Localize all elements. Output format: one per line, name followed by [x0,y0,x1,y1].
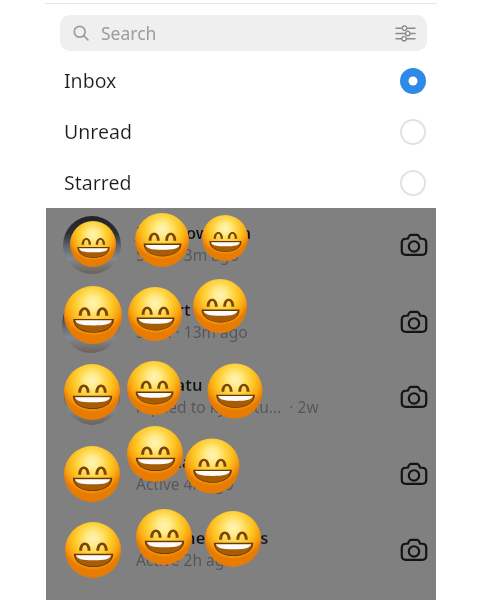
staticText: replied to kybnatu... · 2w [136,396,319,417]
button[interactable]: Robert [46,284,436,360]
button[interactable]: Camera [401,386,427,408]
staticText: Search [101,21,157,45]
button[interactable]: Amelia [46,436,436,512]
button[interactable]: Search [60,15,427,51]
staticText: Robert [136,298,191,320]
button[interactable]: Camera [401,311,427,333]
staticText: Seen · 3m ago [136,244,239,265]
button[interactable]: Camera [401,463,427,485]
staticText: Inbox [64,67,117,94]
staticText: Amelia [136,450,192,472]
staticText: Active 4h ago [136,473,234,494]
staticText: Active 2h ago [136,549,234,570]
staticText: Seen · 13m ago [136,321,248,342]
button[interactable]: Starred [0,157,480,208]
button[interactable]: Camera [401,234,427,256]
staticText: kybnatu [136,373,203,395]
button[interactable]: kybnatu [46,359,436,435]
button[interactable]: Inbox [0,55,480,106]
staticText: Starred [64,169,132,196]
staticText: Jana Kowalska [136,221,252,243]
button[interactable]: Jana Kowalska [46,207,436,283]
button[interactable]: Unread [0,106,480,157]
staticText: Great news, pals [136,526,269,548]
button[interactable]: Camera [401,539,427,561]
staticText: Unread [64,118,132,145]
button[interactable]: Great news, pals [46,512,436,588]
